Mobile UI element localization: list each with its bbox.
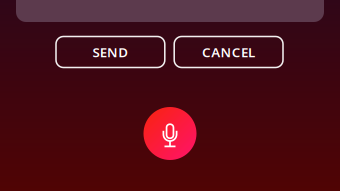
button[interactable]: CANCEL <box>174 36 283 67</box>
button[interactable]: SEND <box>56 36 165 67</box>
staticText: CANCEL <box>202 43 255 61</box>
staticText: SEND <box>93 43 128 61</box>
button[interactable]: Record <box>143 107 196 160</box>
